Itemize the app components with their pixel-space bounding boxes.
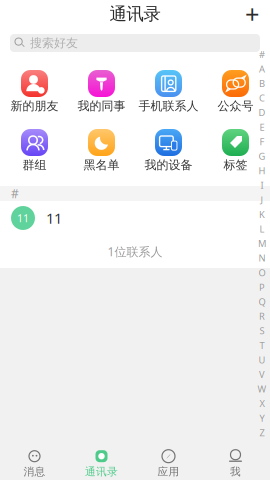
staticText: B (259, 77, 265, 90)
staticText: 黑名单 (83, 158, 119, 172)
staticText: W (257, 383, 266, 395)
staticText: 新的朋友 (10, 99, 58, 113)
staticText: K (259, 208, 265, 220)
staticText: 我的同事 (77, 99, 125, 113)
staticText: N (258, 252, 265, 264)
staticText: O (258, 266, 265, 279)
button[interactable]: 通讯录 (68, 448, 135, 480)
button[interactable]: 我的同事 (68, 70, 135, 115)
staticText: 我 (230, 465, 241, 478)
staticText: A (259, 63, 265, 75)
staticText: # (11, 185, 19, 201)
staticText: Y (259, 412, 264, 424)
staticText: S (259, 324, 264, 337)
button[interactable]: 新的朋友 (1, 70, 68, 115)
staticText: 群组 (22, 158, 46, 172)
button[interactable]: 应用 (135, 448, 202, 480)
staticText: 我的设备 (144, 158, 192, 172)
staticText: H (258, 164, 265, 177)
staticText: 11 (46, 208, 62, 228)
staticText: Z (259, 426, 264, 439)
button[interactable]: 标签 (202, 129, 269, 174)
button[interactable]: 我的设备 (135, 129, 202, 174)
staticText: I (260, 179, 263, 191)
staticText: 标签 (223, 158, 247, 172)
button[interactable]: 公众号 (202, 70, 269, 115)
staticText: R (259, 310, 265, 322)
staticText: 通讯录 (85, 465, 118, 478)
staticText: 应用 (157, 465, 179, 478)
staticText: M (258, 237, 266, 250)
button[interactable]: 黑名单 (68, 129, 135, 174)
staticText: 1位联系人 (107, 243, 162, 259)
staticText: L (259, 223, 264, 235)
staticText: G (258, 150, 265, 162)
button[interactable]: 搜索好友 (10, 34, 260, 52)
staticText: 11 (17, 211, 29, 225)
button[interactable]: 群组 (1, 129, 68, 174)
staticText: E (259, 121, 264, 133)
staticText: # (259, 48, 265, 60)
staticText: C (259, 92, 265, 104)
button[interactable]: Add (239, 1, 265, 27)
staticText: J (260, 194, 263, 206)
staticText: P (259, 281, 265, 293)
staticText: + (245, 0, 259, 31)
staticText: X (259, 397, 264, 410)
staticText: V (259, 368, 265, 381)
staticText: D (258, 106, 265, 119)
button[interactable]: 我 (202, 448, 269, 480)
staticText: T (259, 339, 264, 351)
staticText: 通讯录 (109, 3, 160, 25)
staticText: F (259, 135, 264, 148)
staticText: Q (258, 295, 265, 308)
button[interactable]: 11 (0, 201, 270, 235)
staticText: 手机联系人 (138, 99, 198, 113)
staticText: 公众号 (217, 99, 253, 113)
staticText: U (258, 354, 265, 366)
staticText: 消息 (23, 465, 45, 478)
staticText: 搜索好友 (30, 36, 78, 50)
button[interactable]: 手机联系人 (135, 70, 202, 115)
button[interactable]: 消息 (1, 448, 68, 480)
